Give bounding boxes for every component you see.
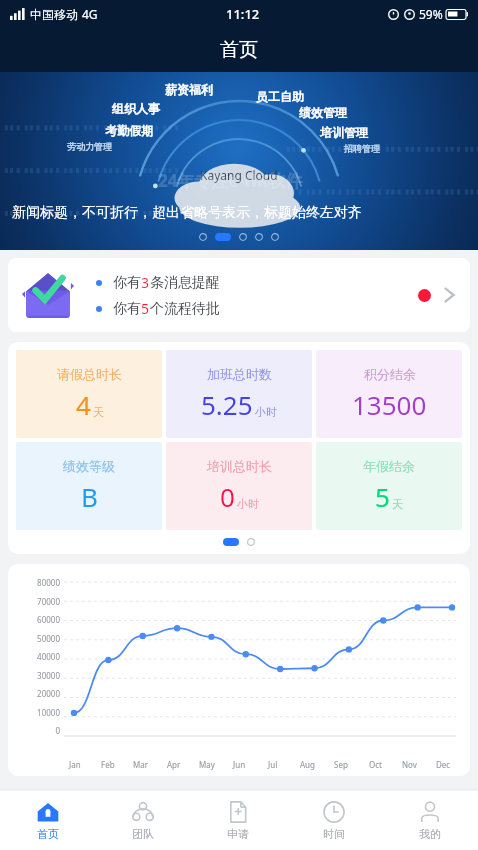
button[interactable] bbox=[255, 233, 263, 241]
staticText: 5.25 bbox=[201, 387, 253, 422]
staticText: 4G bbox=[82, 6, 98, 22]
staticText: 11:12 bbox=[226, 5, 260, 23]
staticText: May bbox=[199, 759, 215, 770]
staticText: 首页 bbox=[220, 38, 258, 62]
staticText: 30000 bbox=[18, 670, 60, 681]
button[interactable]: 我的 bbox=[382, 790, 478, 850]
staticText: 团队 bbox=[132, 827, 154, 841]
staticText: 年假结余 bbox=[363, 458, 415, 474]
staticText: 0 bbox=[18, 725, 60, 736]
staticText: 13500 bbox=[352, 387, 427, 422]
staticText: 60000 bbox=[18, 614, 60, 625]
staticText: 组织人事 bbox=[112, 101, 160, 116]
staticText: B bbox=[81, 479, 98, 514]
staticText: 中国移动 bbox=[30, 7, 78, 22]
staticText: 条消息提醒 bbox=[150, 274, 220, 292]
staticText: 申请 bbox=[227, 827, 249, 841]
button[interactable] bbox=[215, 233, 231, 241]
staticText: Jul bbox=[268, 759, 278, 770]
staticText: Sep bbox=[334, 759, 348, 770]
staticText: 40000 bbox=[18, 651, 60, 662]
staticText: 我的 bbox=[419, 827, 441, 841]
staticText: Jun bbox=[233, 759, 246, 770]
staticText: 5 bbox=[375, 479, 390, 514]
staticText: Mar bbox=[133, 759, 149, 770]
button[interactable] bbox=[223, 538, 239, 546]
staticText: 你有 bbox=[113, 300, 141, 318]
staticText: 薪资福利 bbox=[165, 82, 213, 97]
staticText: 招聘管理 bbox=[344, 143, 380, 154]
staticText: Aug bbox=[300, 759, 315, 770]
staticText: 小时 bbox=[255, 405, 277, 419]
button[interactable]: 0 bbox=[8, 564, 470, 776]
button[interactable]: 积分结余 bbox=[316, 350, 462, 438]
staticText: 5 bbox=[141, 299, 150, 318]
staticText: Apr bbox=[167, 759, 181, 770]
button[interactable]: 你有 bbox=[8, 258, 470, 332]
staticText: 小时 bbox=[237, 497, 259, 511]
button[interactable]: 团队 bbox=[95, 790, 190, 850]
button[interactable]: 时间 bbox=[286, 790, 382, 850]
staticText: 加班总时数 bbox=[207, 366, 272, 382]
staticText: 考勤假期 bbox=[105, 123, 153, 138]
staticText: 积分结余 bbox=[364, 366, 416, 382]
staticText: 24年专注e-HR软件 bbox=[158, 169, 303, 192]
staticText: 时间 bbox=[323, 827, 345, 841]
staticText: 50000 bbox=[18, 633, 60, 644]
staticText: 天 bbox=[93, 405, 104, 419]
staticText: Feb bbox=[101, 759, 115, 770]
staticText: 绩效管理 bbox=[299, 105, 347, 120]
button[interactable]: 加班总时数 bbox=[166, 350, 312, 438]
button[interactable] bbox=[199, 233, 207, 241]
button[interactable]: 绩效等级 bbox=[16, 442, 162, 530]
staticText: Oct bbox=[369, 759, 382, 770]
staticText: 80000 bbox=[18, 577, 60, 588]
staticText: 请假总时长 bbox=[57, 366, 122, 382]
button[interactable]: 请假总时长 bbox=[16, 350, 162, 438]
button[interactable]: 年假结余 bbox=[316, 442, 462, 530]
staticText: 绩效等级 bbox=[63, 458, 115, 474]
staticText: Jan bbox=[69, 759, 81, 770]
button[interactable] bbox=[239, 233, 247, 241]
staticText: 天 bbox=[392, 497, 403, 511]
staticText: 10000 bbox=[18, 707, 60, 718]
staticText: 培训管理 bbox=[320, 125, 368, 140]
staticText: 员工自助 bbox=[256, 89, 304, 104]
staticText: 劳动力管理 bbox=[67, 141, 112, 152]
staticText: Nov bbox=[402, 759, 417, 770]
button[interactable] bbox=[247, 538, 255, 546]
button[interactable]: 首页 bbox=[0, 790, 95, 850]
staticText: 70000 bbox=[18, 596, 60, 607]
button[interactable] bbox=[271, 233, 279, 241]
staticText: 0 bbox=[220, 479, 235, 514]
staticText: 首页 bbox=[37, 827, 59, 841]
staticText: 新闻标题，不可折行，超出省略号表示，标题始终左对齐 bbox=[12, 204, 362, 222]
button[interactable]: 申请 bbox=[190, 790, 286, 850]
button[interactable]: 培训总时长 bbox=[166, 442, 312, 530]
staticText: 你有 bbox=[113, 274, 141, 292]
staticText: 4 bbox=[76, 387, 91, 422]
staticText: 培训总时长 bbox=[207, 458, 272, 474]
staticText: Dec bbox=[436, 759, 451, 770]
staticText: Kayang Cloud bbox=[200, 167, 278, 183]
staticText: 59% bbox=[419, 6, 443, 22]
staticText: 20000 bbox=[18, 688, 60, 699]
staticText: 个流程待批 bbox=[150, 300, 220, 318]
staticText: 3 bbox=[141, 273, 150, 292]
